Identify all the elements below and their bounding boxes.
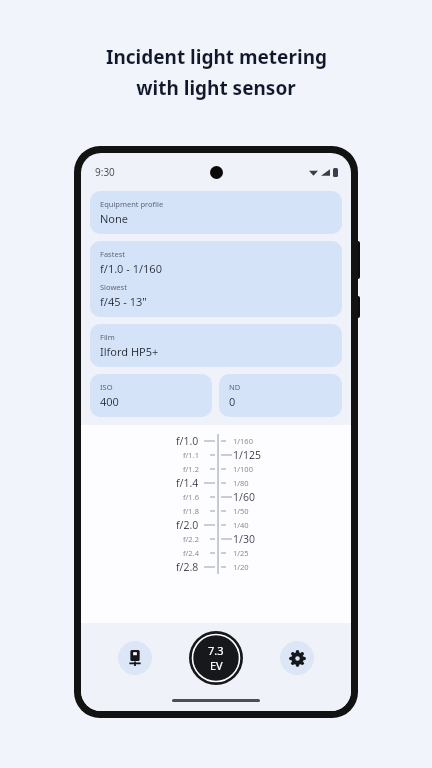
button[interactable]: f/1.1 [147,448,285,462]
staticText: 1/60 [233,490,255,504]
staticText: None [100,211,129,226]
staticText: 1/20 [233,562,249,572]
staticText: 400 [100,394,119,409]
button[interactable]: 7.3 [189,631,243,685]
button[interactable]: f/2.8 [147,560,285,574]
staticText: with light sensor [136,75,296,101]
button[interactable]: Film [90,324,342,367]
button[interactable]: Fastest [90,241,342,317]
staticText: f/2.0 [176,518,199,532]
button[interactable]: f/2.0 [147,518,285,532]
staticText: 1/50 [233,506,249,516]
staticText: f/2.4 [183,548,199,558]
button[interactable]: Equipment profile [90,191,342,234]
staticText: f/2.2 [183,534,199,544]
staticText: f/1.4 [176,476,199,490]
button[interactable]: ND [219,374,342,417]
button[interactable]: f/1.4 [147,476,285,490]
staticText: f/1.6 [183,492,199,502]
staticText: Ilford HP5+ [100,344,159,359]
staticText: 9:30 [95,165,115,179]
staticText: f/1.1 [183,450,199,460]
staticText: Fastest [100,249,125,259]
button[interactable]: f/1.0 [147,434,285,448]
staticText: f/45 - 13" [100,294,147,309]
staticText: Film [100,332,115,342]
staticText: Incident light metering [106,44,327,70]
staticText: EV [210,658,223,673]
staticText: 0 [229,394,236,409]
button[interactable]: f/2.2 [147,532,285,546]
staticText: f/1.8 [183,506,199,516]
button[interactable]: ISO [90,374,212,417]
staticText: f/1.0 [176,434,199,448]
button[interactable]: Light meter [118,641,152,675]
staticText: f/2.8 [176,560,199,574]
staticText: 1/30 [233,532,255,546]
staticText: ISO [100,382,113,392]
button[interactable]: f/1.8 [147,504,285,518]
button[interactable]: f/2.4 [147,546,285,560]
button[interactable]: Settings [280,641,314,675]
button[interactable]: f/1.2 [147,462,285,476]
staticText: 1/100 [233,464,253,474]
button[interactable]: f/1.6 [147,490,285,504]
staticText: 1/80 [233,478,249,488]
staticText: f/1.0 - 1/160 [100,261,162,276]
staticText: 1/40 [233,520,249,530]
staticText: 1/160 [233,436,253,446]
staticText: 1/125 [233,448,261,462]
staticText: Equipment profile [100,199,164,209]
staticText: Slowest [100,282,127,292]
staticText: 1/25 [233,548,249,558]
staticText: 7.3 [208,643,224,658]
staticText: ND [229,382,241,392]
staticText: f/1.2 [183,464,199,474]
